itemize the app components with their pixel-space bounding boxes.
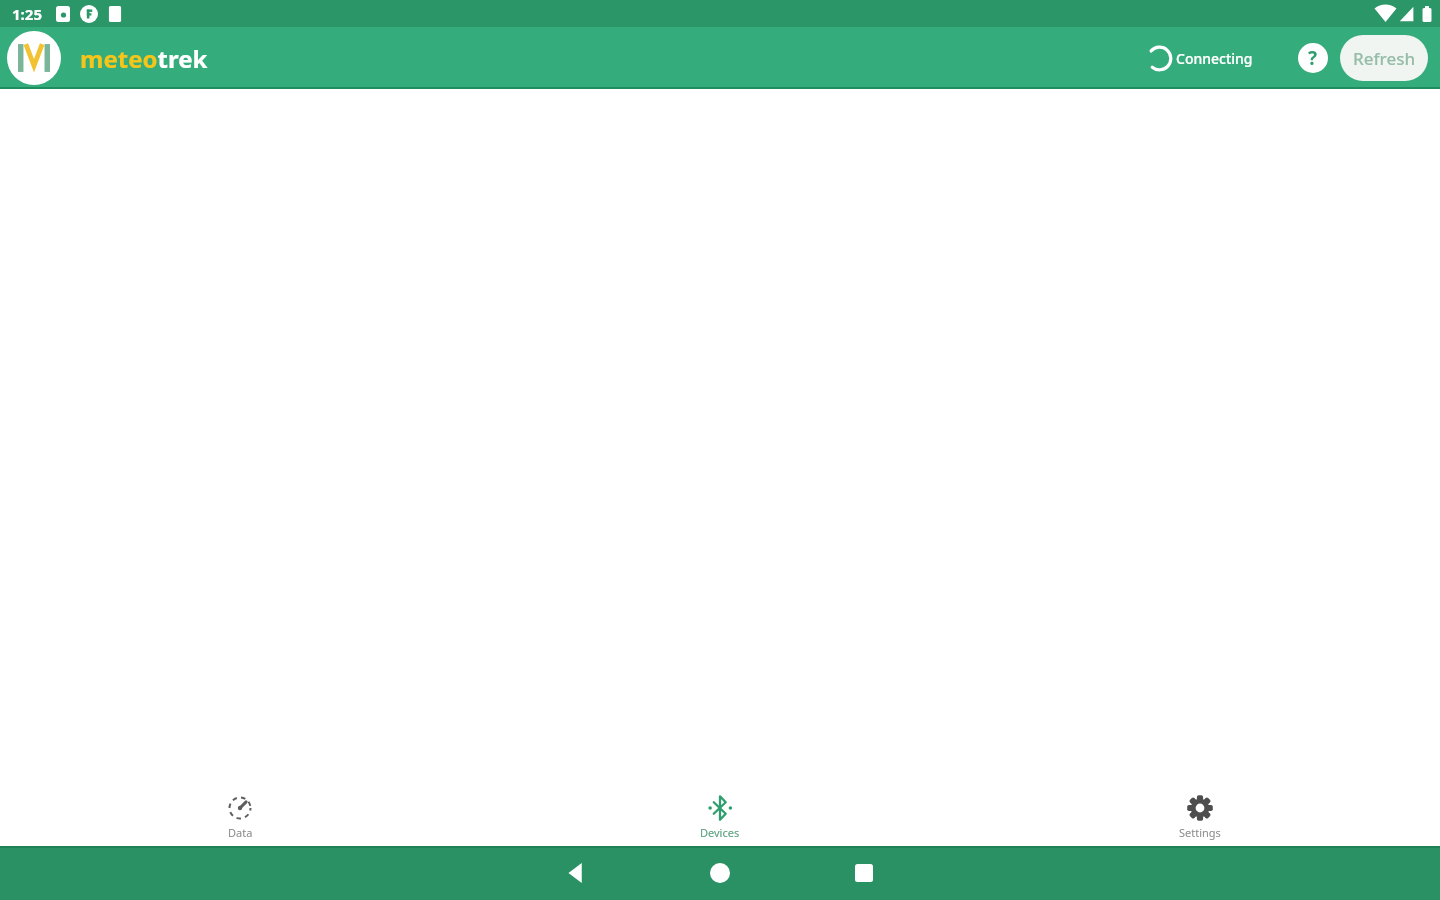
staticText: ? bbox=[1308, 45, 1318, 71]
staticText: Connecting bbox=[1176, 49, 1253, 68]
button[interactable] bbox=[844, 853, 884, 893]
staticText: meteotrek bbox=[80, 42, 208, 75]
button[interactable] bbox=[556, 853, 596, 893]
button[interactable]: ? bbox=[1298, 43, 1328, 73]
button[interactable]: Refresh bbox=[1340, 35, 1428, 81]
button[interactable]: Devices bbox=[480, 782, 960, 846]
staticText: Settings bbox=[1179, 825, 1221, 840]
staticText: Devices bbox=[700, 825, 740, 840]
staticText: Refresh bbox=[1353, 47, 1416, 70]
staticText: 1:25 bbox=[12, 4, 42, 24]
button[interactable]: Data bbox=[0, 782, 480, 846]
staticText: Data bbox=[228, 825, 253, 840]
button[interactable]: Settings bbox=[960, 782, 1440, 846]
button[interactable] bbox=[700, 853, 740, 893]
